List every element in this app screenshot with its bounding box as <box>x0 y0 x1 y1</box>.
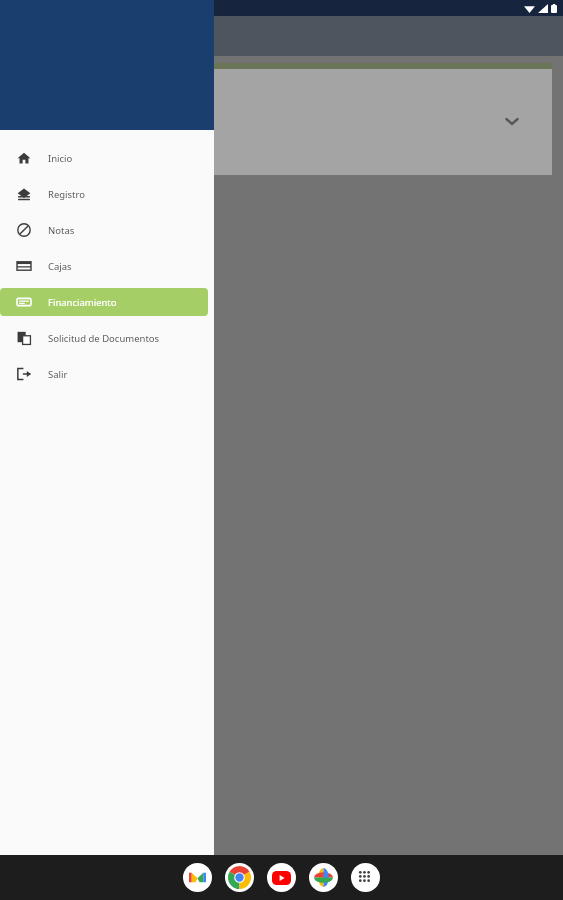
button[interactable]: Chrome <box>225 863 254 892</box>
button[interactable]: Photos <box>309 863 338 892</box>
staticText: Inicio <box>48 152 73 165</box>
button[interactable]: Cajas <box>0 252 208 280</box>
button[interactable]: Solicitud de Documentos <box>0 324 208 352</box>
staticText: Notas <box>48 224 75 237</box>
button[interactable]: Gmail <box>183 863 212 892</box>
button[interactable]: Registro <box>0 180 208 208</box>
staticText: Registro <box>48 188 86 201</box>
button[interactable]: Financiamiento <box>0 288 208 316</box>
staticText: Solicitud de Documentos <box>48 332 160 345</box>
button[interactable]: Inicio <box>0 144 208 172</box>
button[interactable]: Aplicaciones <box>351 863 380 892</box>
staticText: Cajas <box>48 260 72 273</box>
button[interactable]: Salir <box>0 360 208 388</box>
staticText: Salir <box>48 368 68 381</box>
button[interactable]: Notas <box>0 216 208 244</box>
button[interactable]: YouTube <box>267 863 296 892</box>
staticText: Financiamiento <box>48 296 117 309</box>
button[interactable]: Expandir <box>502 111 522 131</box>
